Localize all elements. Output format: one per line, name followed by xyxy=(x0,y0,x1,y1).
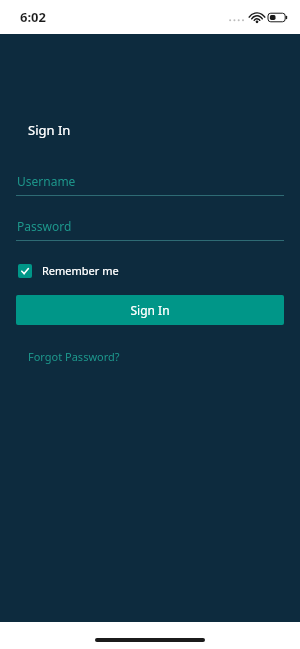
button[interactable]: Username xyxy=(16,173,284,196)
button[interactable]: Remember me xyxy=(16,261,121,280)
staticText: Sign In xyxy=(28,121,71,139)
staticText: Sign In xyxy=(130,302,170,318)
staticText: Forgot Password? xyxy=(28,349,120,364)
staticText: Username xyxy=(17,173,76,189)
button[interactable]: Forgot Password? xyxy=(28,349,120,364)
staticText: Password xyxy=(17,218,72,234)
button[interactable]: Sign In xyxy=(16,295,284,325)
staticText: 6:02 xyxy=(20,8,46,26)
button[interactable]: Password xyxy=(16,218,284,241)
staticText: Remember me xyxy=(42,263,119,278)
